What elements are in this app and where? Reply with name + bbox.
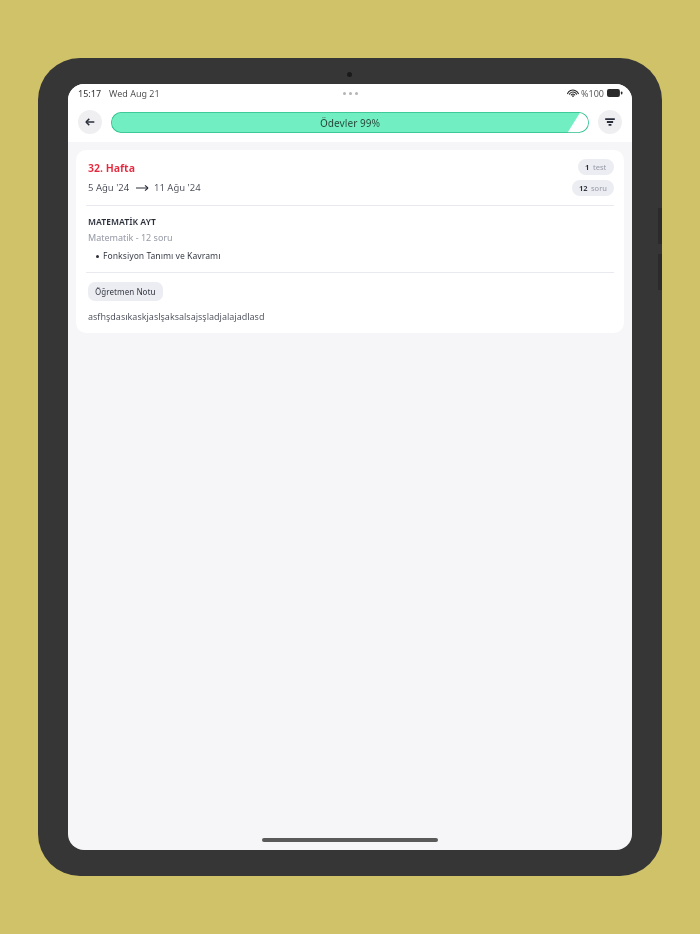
button[interactable]: 32. Hafta xyxy=(76,150,624,333)
staticText: soru xyxy=(591,183,607,193)
staticText: asfhşdasıkaskjaslşaksalsajsşladjalajadla… xyxy=(88,310,265,322)
button[interactable]: Filter xyxy=(598,110,622,134)
button[interactable]: 12 xyxy=(572,180,614,196)
staticText: 32. Hafta xyxy=(88,161,135,175)
staticText: Fonksiyon Tanımı ve Kavramı xyxy=(103,250,221,262)
staticText: MATEMATİK AYT xyxy=(88,216,156,228)
staticText: Wed Aug 21 xyxy=(109,87,160,99)
staticText: 11 Ağu '24 xyxy=(154,181,201,194)
staticText: Ödevler 99% xyxy=(320,116,381,130)
staticText: Matematik - 12 soru xyxy=(88,231,173,243)
staticText: Öğretmen Notu xyxy=(95,286,156,297)
staticText: 12 xyxy=(579,183,588,193)
button[interactable]: 1 xyxy=(578,159,614,175)
staticText: test xyxy=(593,162,607,172)
staticText: 15:17 xyxy=(78,87,102,99)
staticText: %100 xyxy=(581,87,604,99)
staticText: 1 xyxy=(585,162,590,172)
staticText: 5 Ağu '24 xyxy=(88,181,130,194)
button[interactable]: Ödevler 99% xyxy=(111,112,589,133)
button[interactable]: Back xyxy=(78,110,102,134)
